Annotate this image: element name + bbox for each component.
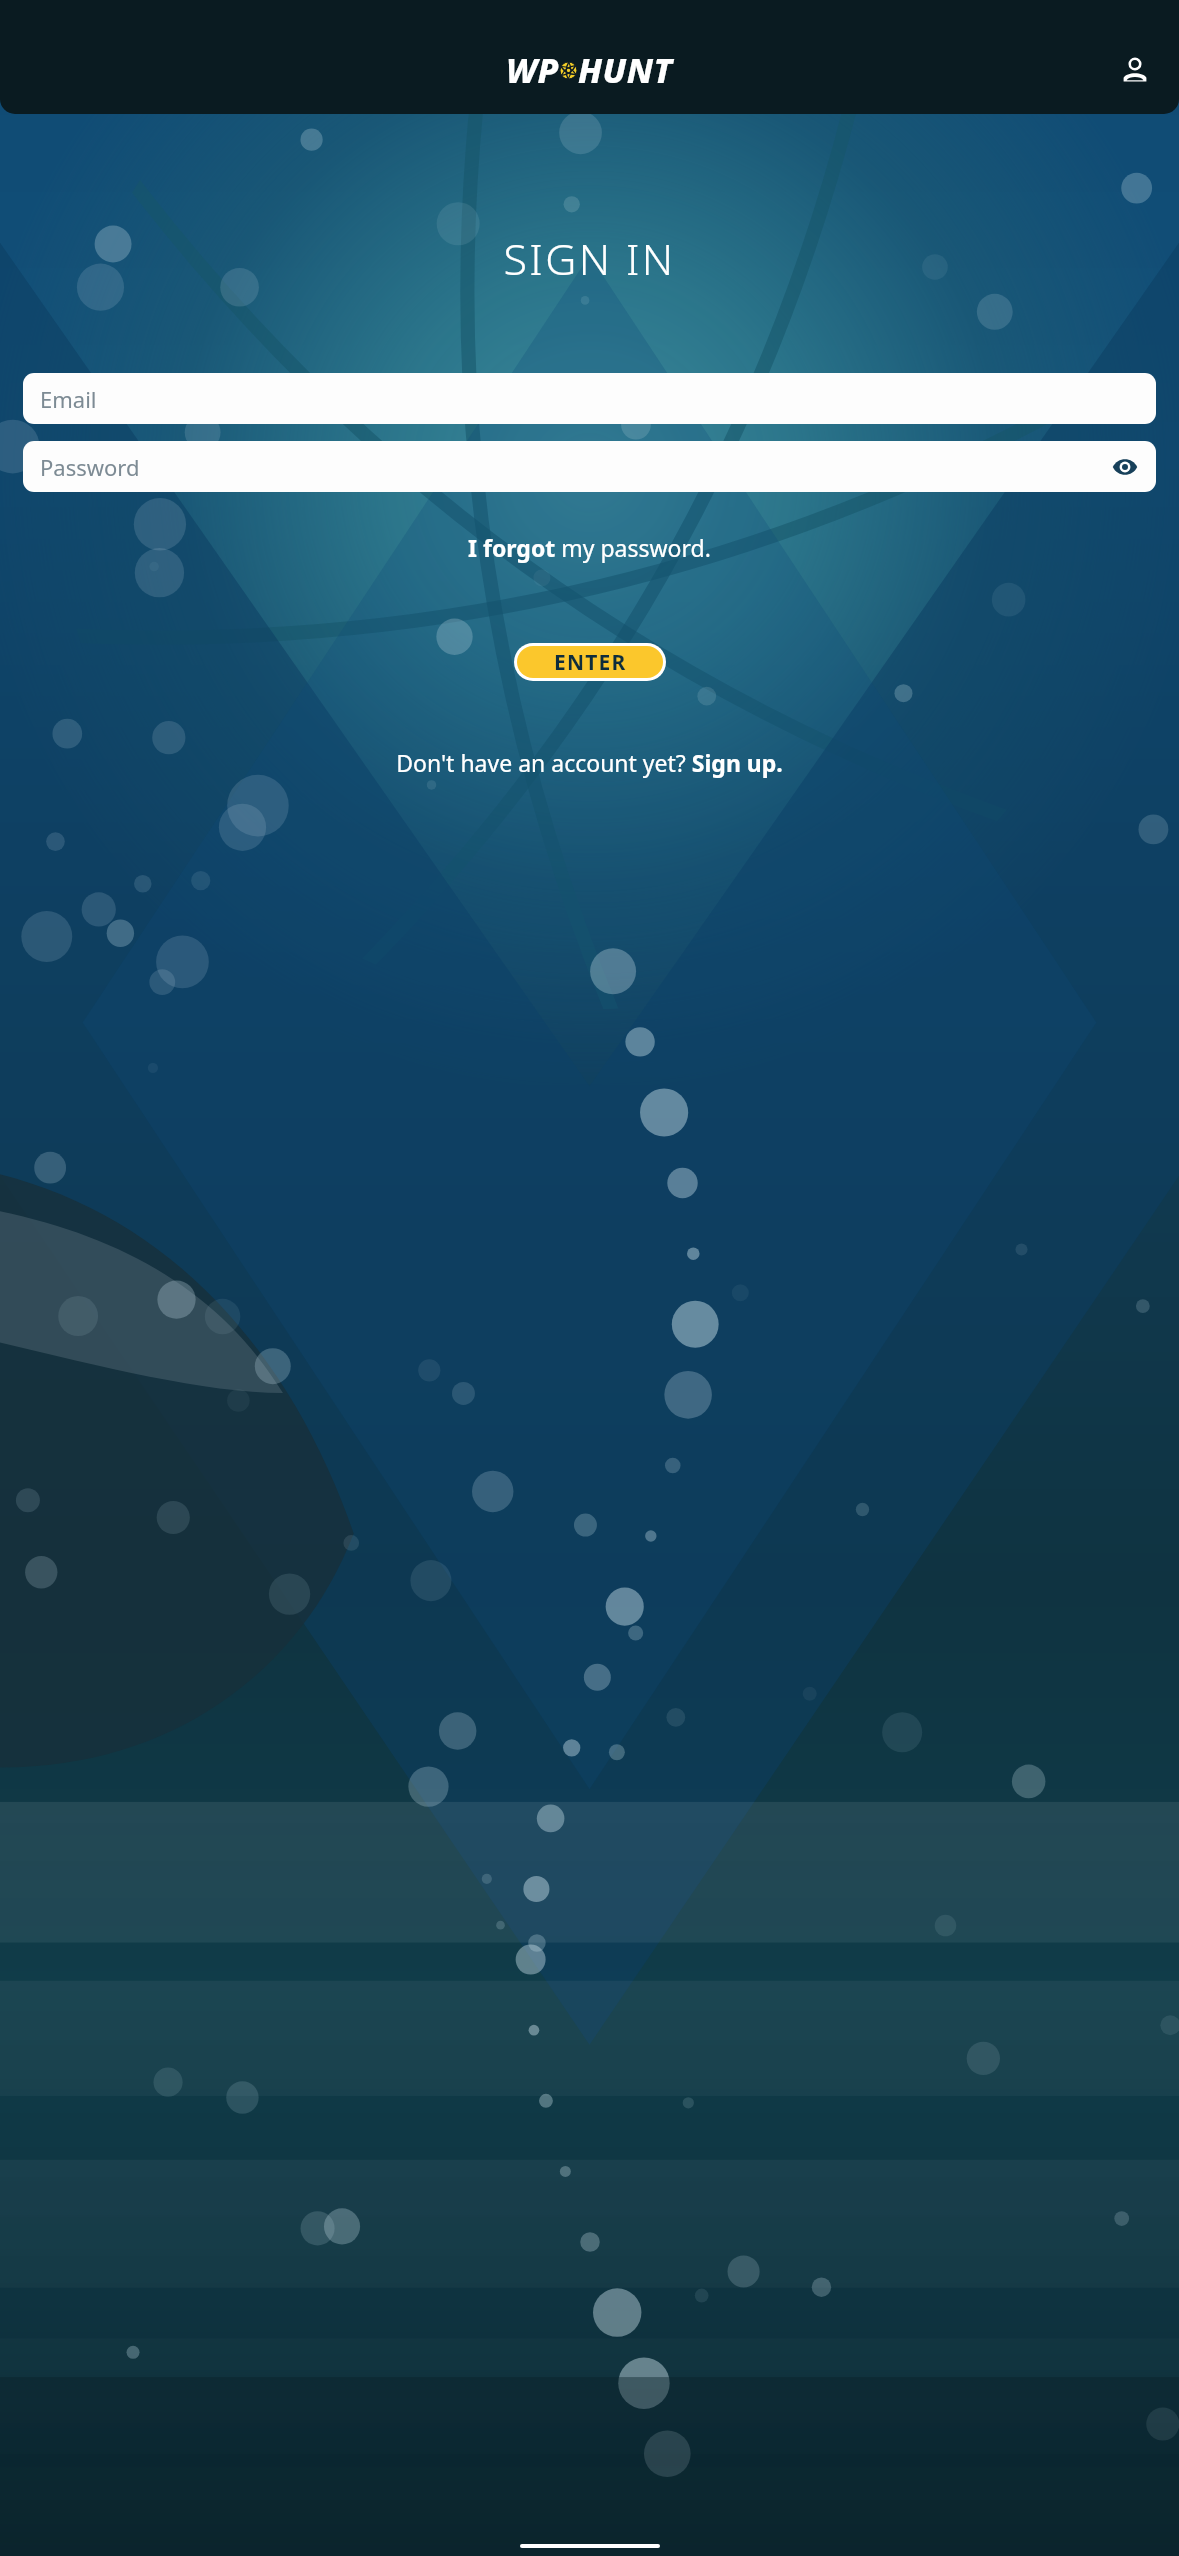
staticText: Email [40,384,97,414]
staticText: Password [40,452,140,482]
staticText: WP [506,47,559,93]
staticText: SIGN IN [0,229,1179,288]
button[interactable]: ENTER [517,646,663,678]
staticText: ENTER [554,648,627,677]
button[interactable]: Email [23,373,1156,424]
button[interactable]: Don't have an account yet? Sign up. [0,743,1179,782]
staticText: HUNT [578,47,673,93]
button[interactable]: Account [1113,48,1157,92]
staticText: I forgot my password. [468,532,711,563]
button[interactable]: WP [506,47,673,93]
staticText: Don't have an account yet? Sign up. [396,747,783,778]
button[interactable]: Password [23,441,1156,492]
button[interactable]: Show password [1106,448,1144,486]
button[interactable]: I forgot my password. [0,528,1179,567]
